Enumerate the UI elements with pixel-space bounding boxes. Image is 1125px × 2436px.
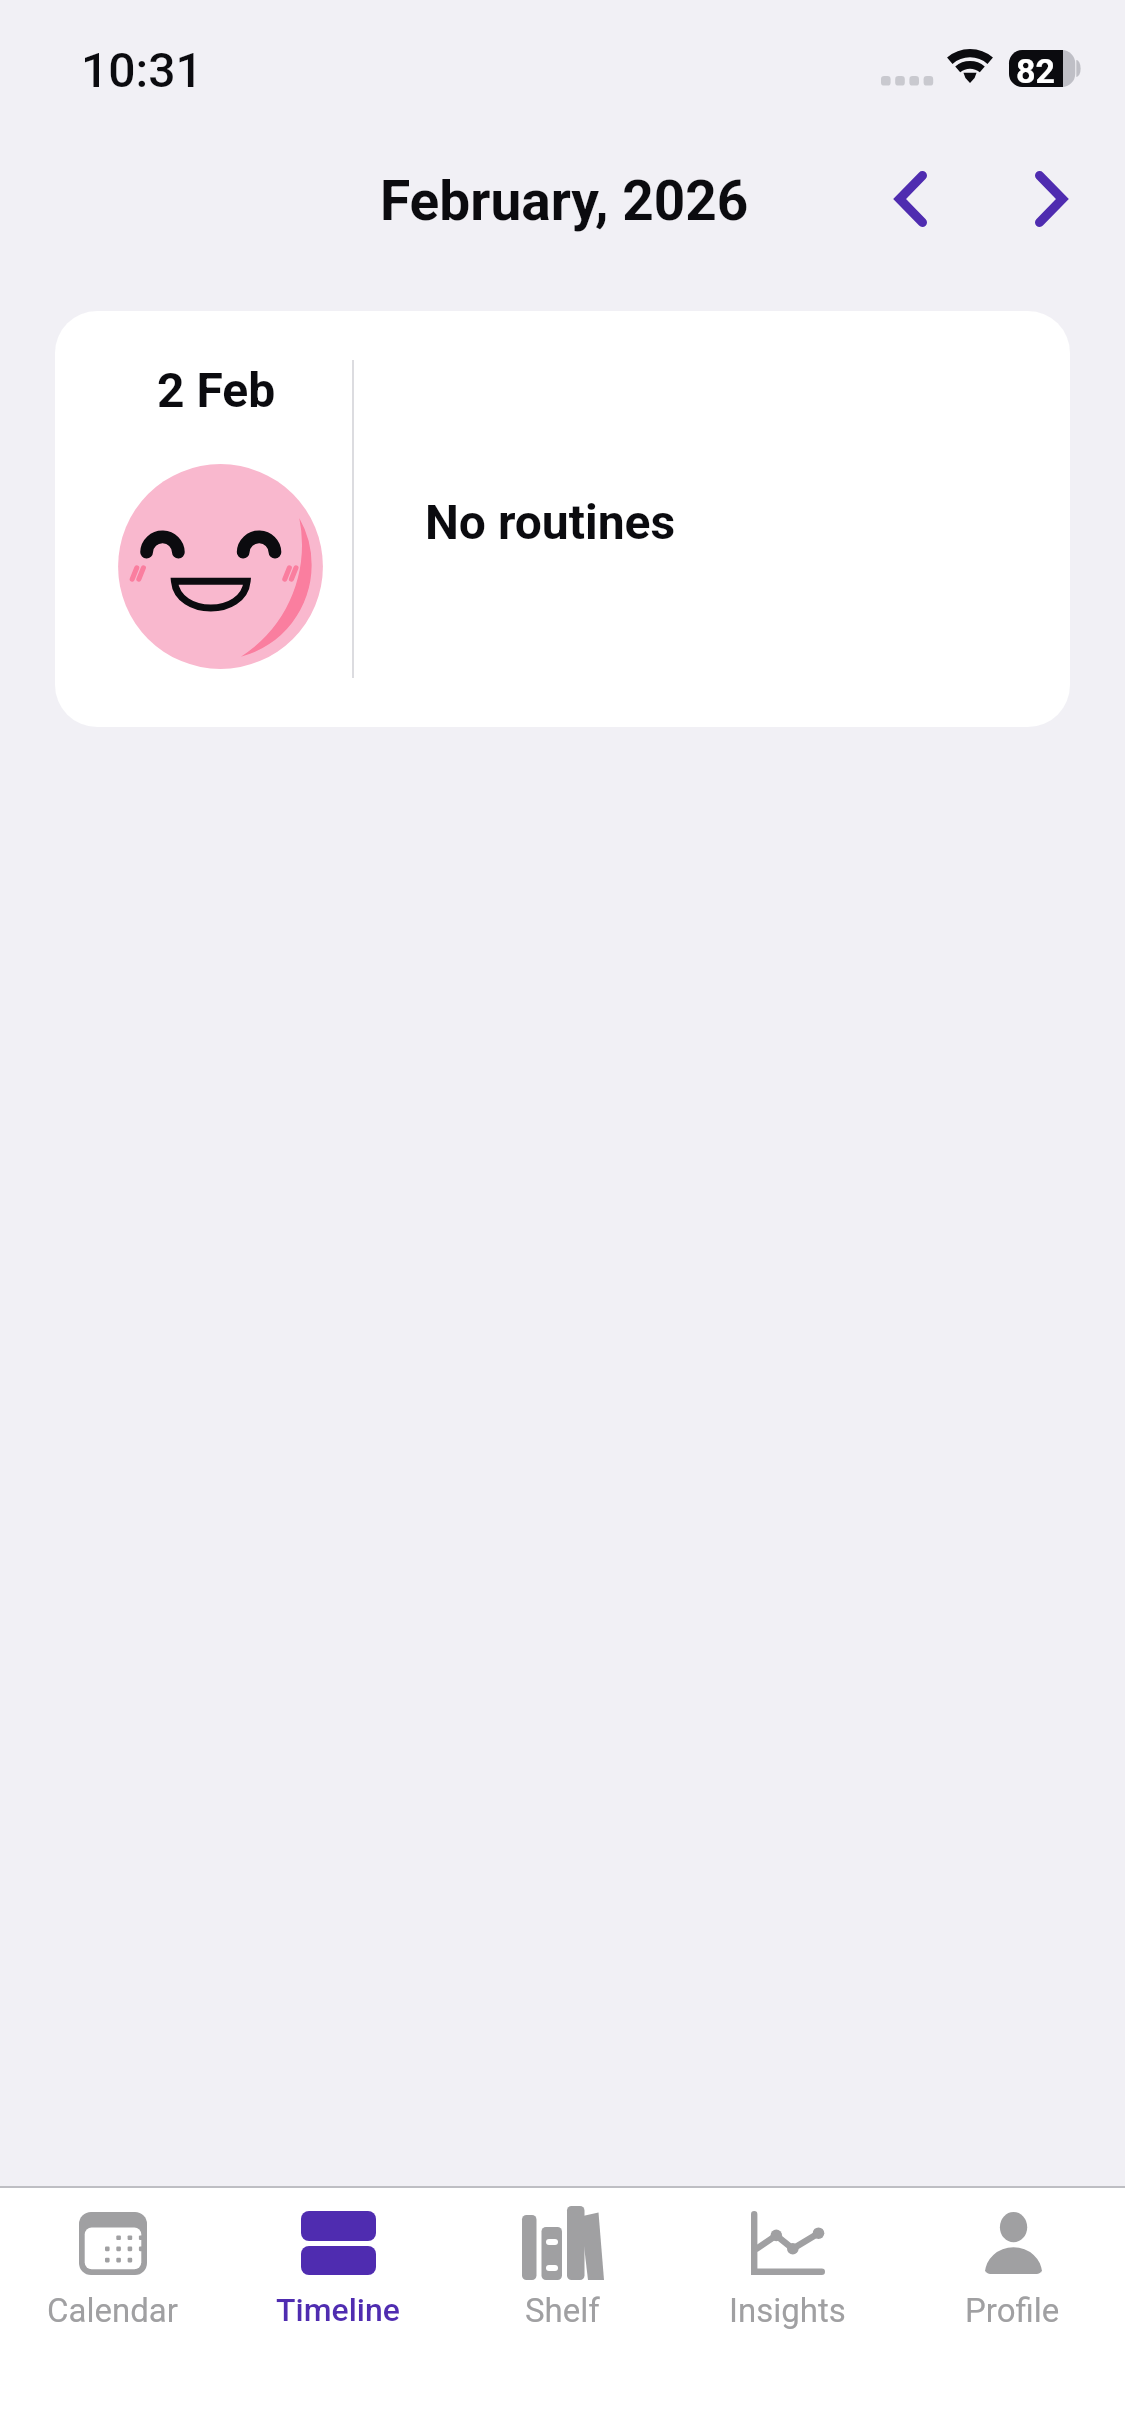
button[interactable]: Calendar — [0, 2195, 225, 2436]
button[interactable]: Shelf — [450, 2195, 675, 2436]
staticText: 2 Feb — [157, 362, 276, 418]
staticText: Insights — [729, 2291, 846, 2330]
staticText: Profile — [965, 2291, 1060, 2330]
staticText: Calendar — [47, 2291, 178, 2330]
staticText: No routines — [425, 494, 676, 550]
button[interactable]: Previous month — [861, 156, 961, 242]
staticText: 10:31 — [81, 42, 203, 98]
staticText: Timeline — [276, 2291, 400, 2329]
staticText: 82 — [1016, 51, 1056, 88]
button[interactable]: 2 Feb — [55, 311, 1070, 727]
button[interactable]: Insights — [675, 2195, 900, 2436]
staticText: February, 2026 — [380, 169, 749, 233]
button[interactable]: Next month — [1001, 156, 1101, 242]
staticText: Shelf — [525, 2291, 600, 2330]
button[interactable]: Profile — [900, 2195, 1125, 2436]
button[interactable]: Timeline — [225, 2195, 450, 2436]
